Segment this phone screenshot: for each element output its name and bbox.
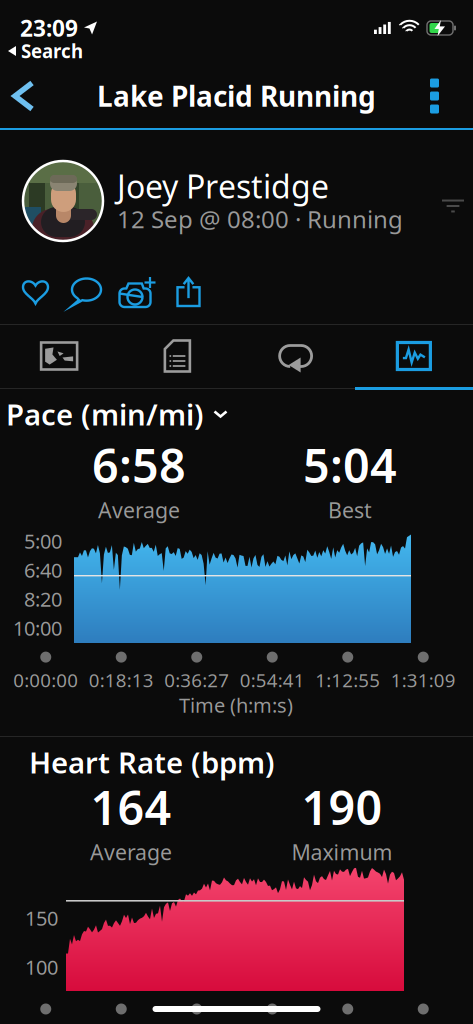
staticText: 6:58 — [92, 434, 186, 496]
button[interactable]: Charts — [355, 325, 473, 387]
staticText: 164 — [90, 776, 171, 838]
button[interactable]: Details — [118, 325, 236, 387]
staticText: 6:40 — [24, 557, 62, 583]
button[interactable]: Comment — [61, 270, 112, 314]
staticText: Lake Placid Running — [97, 77, 376, 115]
button[interactable]: Pace (min/mi) — [0, 386, 240, 441]
staticText: 150 — [25, 905, 58, 931]
button[interactable]: Profile photo — [19, 157, 107, 245]
staticText: Heart Rate (bpm) — [29, 742, 275, 781]
staticText: Time (h:m:s) — [179, 692, 293, 718]
button[interactable]: Map — [0, 325, 118, 387]
staticText: 23:09 — [20, 13, 78, 43]
button[interactable]: More options — [410, 66, 473, 125]
staticText: 1:12:55 — [315, 668, 380, 692]
staticText: 0:18:13 — [89, 668, 154, 692]
staticText: 0:00:00 — [13, 668, 78, 692]
staticText: 0:36:27 — [164, 668, 229, 692]
staticText: Average — [98, 496, 180, 524]
staticText: 8:20 — [24, 586, 62, 612]
staticText: Best — [328, 496, 372, 524]
staticText: 1:31:09 — [391, 668, 456, 692]
button[interactable]: Share — [163, 270, 214, 314]
button[interactable]: Back — [0, 66, 54, 126]
staticText: Average — [90, 838, 172, 866]
staticText: 0:54:41 — [240, 668, 305, 692]
staticText: 5:04 — [303, 434, 397, 496]
button[interactable]: Add photo — [112, 270, 163, 314]
staticText: 5:00 — [24, 528, 62, 554]
button[interactable]: Laps — [236, 325, 355, 387]
staticText: 100 — [25, 954, 58, 980]
button[interactable]: Like — [10, 270, 61, 314]
staticText: Pace (min/mi) — [6, 394, 204, 433]
staticText: Maximum — [291, 838, 392, 866]
staticText: Search — [21, 39, 83, 63]
staticText: 10:00 — [13, 615, 62, 641]
staticText: 12 Sep @ 08:00 · Running — [117, 203, 403, 235]
staticText: 190 — [301, 776, 382, 838]
staticText: Joey Prestidge — [117, 165, 329, 207]
